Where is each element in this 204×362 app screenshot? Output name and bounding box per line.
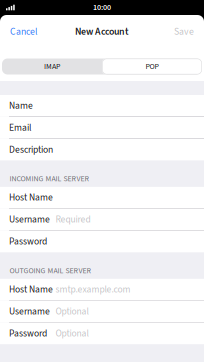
staticText: Password bbox=[9, 235, 47, 248]
staticText: Password bbox=[9, 327, 47, 340]
button[interactable]: Password bbox=[0, 231, 204, 252]
button[interactable]: POP bbox=[102, 58, 202, 74]
staticText: OUTGOING MAIL SERVER bbox=[9, 265, 90, 276]
button[interactable]: Name bbox=[0, 95, 204, 116]
staticText: Host Name bbox=[9, 191, 53, 204]
staticText: IMAP bbox=[44, 61, 60, 72]
staticText: smtp.example.com bbox=[55, 283, 130, 296]
button[interactable]: Save bbox=[164, 15, 204, 48]
button[interactable]: Cancel bbox=[0, 15, 47, 48]
staticText: Email bbox=[9, 121, 31, 135]
button[interactable]: IMAP bbox=[2, 58, 102, 74]
button[interactable]: Password bbox=[0, 323, 204, 344]
staticText: 10:00 bbox=[93, 2, 111, 13]
staticText: Name bbox=[9, 99, 33, 113]
staticText: New Account bbox=[75, 25, 129, 39]
staticText: Description bbox=[9, 143, 53, 157]
button[interactable]: Username bbox=[0, 301, 204, 322]
button[interactable]: Email bbox=[0, 117, 204, 138]
button[interactable]: Host Name bbox=[0, 279, 204, 300]
staticText: Cancel bbox=[10, 25, 37, 39]
staticText: Optional bbox=[55, 327, 88, 340]
staticText: Optional bbox=[55, 305, 88, 318]
staticText: Username bbox=[9, 305, 50, 318]
staticText: Host Name bbox=[9, 283, 53, 296]
button[interactable]: Description bbox=[0, 139, 204, 160]
button[interactable]: Username bbox=[0, 209, 204, 230]
staticText: POP bbox=[145, 61, 158, 72]
staticText: Save bbox=[174, 25, 194, 39]
staticText: INCOMING MAIL SERVER bbox=[9, 173, 88, 184]
button[interactable]: Host Name bbox=[0, 187, 204, 208]
staticText: Username bbox=[9, 213, 50, 226]
staticText: Required bbox=[55, 213, 90, 226]
